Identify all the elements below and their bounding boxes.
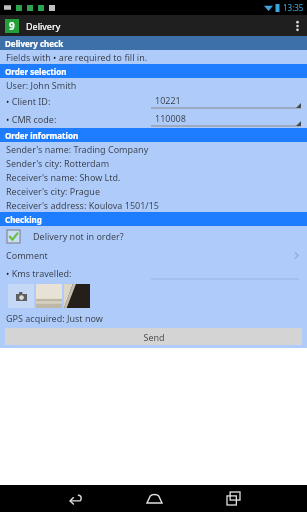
staticText: Order selection xyxy=(5,66,67,77)
button[interactable]: Photo 2 xyxy=(64,284,90,308)
staticText: Delivery xyxy=(26,20,61,32)
button[interactable]: More options xyxy=(287,15,307,36)
staticText: Receiver's city: Prague xyxy=(6,185,100,197)
button[interactable]: Back xyxy=(60,485,90,512)
staticText: Comment xyxy=(6,249,48,261)
staticText: Receiver's address: Koulova 1501/15 xyxy=(6,199,159,211)
staticText: GPS acquired: Just now xyxy=(6,312,103,324)
button[interactable]: Comment xyxy=(0,246,307,264)
staticText: • CMR code: xyxy=(6,113,57,125)
staticText: 110008 xyxy=(155,112,186,124)
button[interactable]: • Client ID: xyxy=(0,92,307,110)
staticText: Delivery not in order? xyxy=(33,230,124,242)
staticText: • Client ID: xyxy=(6,95,51,107)
staticText: Checking xyxy=(5,214,42,225)
staticText: Sender's city: Rotterdam xyxy=(6,157,110,169)
staticText: 9 xyxy=(9,19,15,33)
button[interactable]: Send xyxy=(5,328,302,345)
button[interactable]: • Kms travelled: xyxy=(0,264,307,282)
staticText: Order information xyxy=(5,130,79,141)
staticText: 13:35 xyxy=(283,2,304,13)
staticText: Fields with • are required to fill in. xyxy=(6,51,148,63)
staticText: User: John Smith xyxy=(6,79,77,91)
staticText: Receiver's name: Show Ltd. xyxy=(6,171,121,183)
button[interactable]: Delivery not in order? xyxy=(0,226,307,246)
staticText: 10221 xyxy=(155,94,181,106)
button[interactable]: Home xyxy=(139,485,169,512)
staticText: Send xyxy=(143,331,165,343)
staticText: Sender's name: Trading Company xyxy=(6,143,149,155)
staticText: • Kms travelled: xyxy=(6,267,72,279)
button[interactable]: Photo 1 xyxy=(36,284,62,308)
button[interactable]: Take photo xyxy=(8,284,34,308)
staticText: Delivery check xyxy=(5,38,64,49)
button[interactable]: • CMR code: xyxy=(0,110,307,128)
button[interactable]: Recent apps xyxy=(218,485,248,512)
